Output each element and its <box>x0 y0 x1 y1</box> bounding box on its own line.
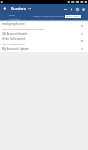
button[interactable]: History <box>74 6 80 12</box>
staticText: mail.google.com <box>2 22 25 26</box>
staticText: Search in mail and contacts <box>33 14 64 17</box>
staticText: all unread <box>9 18 20 20</box>
button[interactable]: Bookmark <box>68 6 74 12</box>
staticText: Verify your account now to continue <box>2 27 45 30</box>
button[interactable]: Star <box>80 32 84 36</box>
button[interactable]: Back <box>0 4 9 13</box>
staticText: inbox <box>9 14 15 17</box>
button[interactable]: Star <box>80 24 84 28</box>
staticText: LEARN MORE <box>66 15 80 18</box>
staticText: Hello hello world <box>2 37 25 41</box>
staticText: GB Account Emails <box>2 32 80 36</box>
button[interactable]: mail.google.com <box>0 22 88 30</box>
button[interactable]: LEARN MORE <box>65 15 81 18</box>
button[interactable]: Star <box>80 39 84 43</box>
button[interactable]: My Account Update <box>0 45 88 52</box>
staticText: this is a subject line <box>2 42 25 45</box>
button[interactable]: Hello hello world <box>0 37 88 45</box>
button[interactable]: Preview <box>62 6 68 12</box>
staticText: My Account Update <box>2 47 80 51</box>
button[interactable]: GB Account Emails <box>0 30 88 37</box>
button[interactable]: Star <box>80 47 84 51</box>
staticText: Kundera <box>11 6 26 11</box>
button[interactable]: Apps <box>80 6 86 12</box>
